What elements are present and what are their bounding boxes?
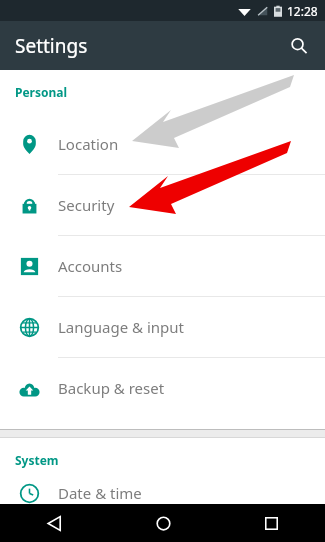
button[interactable]: Location xyxy=(0,114,325,174)
staticText: Security xyxy=(58,195,115,215)
staticText: Language & input xyxy=(58,317,184,337)
staticText: 12:28 xyxy=(287,3,318,19)
staticText: Settings xyxy=(15,33,88,59)
staticText: Location xyxy=(58,134,119,154)
staticText: Accounts xyxy=(58,256,123,276)
button[interactable]: Language & input xyxy=(0,297,325,357)
button[interactable]: Search xyxy=(279,26,319,66)
staticText: Personal xyxy=(15,84,68,100)
staticText: System xyxy=(15,452,59,468)
staticText: Date & time xyxy=(58,483,142,503)
button[interactable]: Security xyxy=(0,175,325,235)
button[interactable]: Recents xyxy=(248,504,294,542)
button[interactable]: Backup & reset xyxy=(0,358,325,418)
button[interactable]: Accounts xyxy=(0,236,325,296)
staticText: Backup & reset xyxy=(58,378,165,398)
button[interactable]: Date & time xyxy=(0,482,325,504)
button[interactable]: Back xyxy=(31,504,77,542)
button[interactable]: Home xyxy=(140,504,186,542)
